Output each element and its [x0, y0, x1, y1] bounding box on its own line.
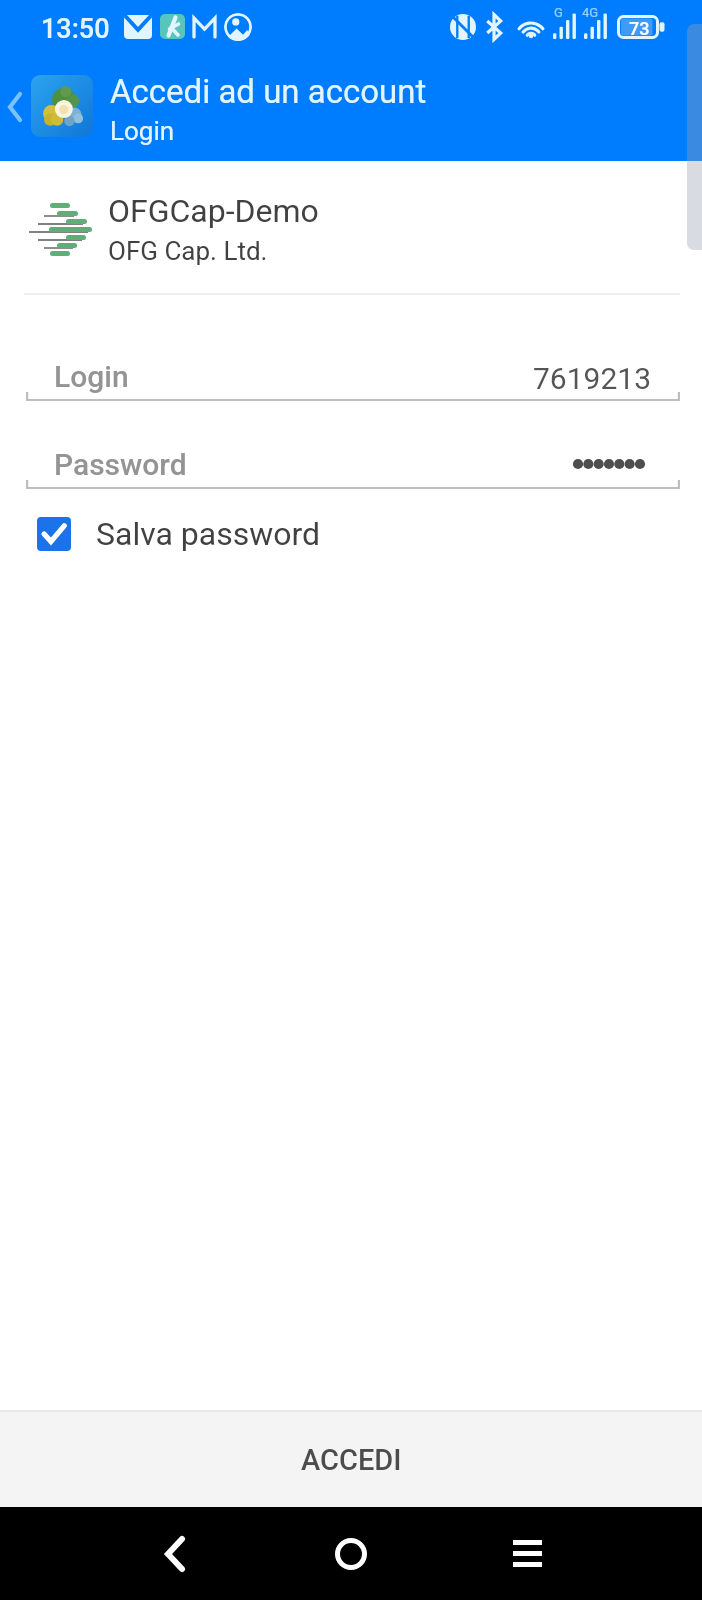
button[interactable]: Back	[145, 1507, 205, 1600]
staticText: 4G	[582, 5, 599, 20]
button[interactable]: Back	[0, 79, 30, 135]
staticText: Login	[110, 116, 175, 146]
staticText: Password	[54, 447, 187, 482]
button[interactable]: Salva password	[0, 508, 702, 560]
staticText: ACCEDI	[301, 1443, 402, 1477]
staticText: 73	[629, 18, 650, 39]
button[interactable]: Recent apps	[497, 1507, 557, 1600]
button[interactable]: Login	[26, 358, 680, 402]
button[interactable]: Password	[26, 446, 680, 490]
staticText: OFG Cap. Ltd.	[108, 236, 268, 266]
staticText: Accedi ad un account	[110, 72, 427, 111]
staticText: OFGCap-Demo	[108, 192, 319, 230]
button[interactable]: OFGCap-Demo	[0, 161, 702, 293]
staticText: 13:50	[41, 13, 110, 45]
staticText: Login	[54, 359, 129, 394]
button[interactable]: Home	[321, 1507, 381, 1600]
staticText: G	[554, 5, 563, 20]
staticText: 7619213	[533, 361, 652, 396]
button[interactable]: ACCEDI	[0, 1412, 702, 1507]
staticText: Salva password	[96, 515, 321, 553]
